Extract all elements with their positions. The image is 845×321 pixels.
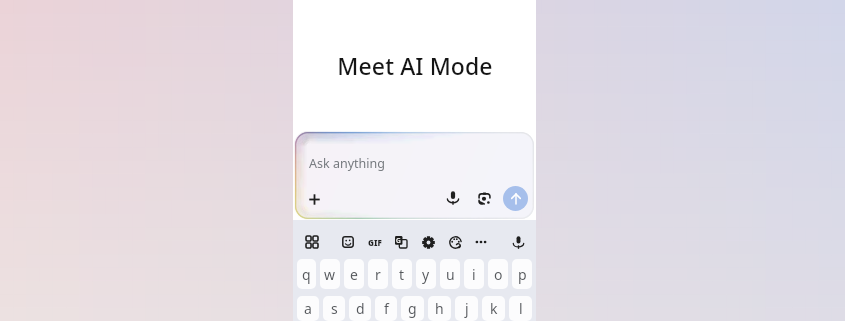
button[interactable]: o [488,259,508,289]
button[interactable]: g [401,296,424,321]
staticText: t [399,265,405,284]
button[interactable]: i [464,259,484,289]
staticText: d [356,299,365,318]
staticText: r [375,265,381,284]
button[interactable]: translate [391,232,411,252]
button[interactable]: j [455,296,478,321]
button[interactable] [296,133,533,218]
button[interactable]: Add [304,189,325,210]
button[interactable]: palette [445,232,465,252]
button[interactable]: gif [365,232,385,252]
staticText: GIF [368,237,382,248]
button[interactable]: gear [418,232,438,252]
staticText: j [465,299,469,318]
staticText: Ask anything [309,155,385,172]
staticText: a [304,299,312,318]
button[interactable]: l [509,296,532,321]
staticText: q [302,265,311,284]
staticText: e [350,265,358,284]
staticText: i [472,265,476,284]
button[interactable]: dots [471,232,491,252]
staticText: w [324,265,336,284]
button[interactable]: q [297,259,316,289]
staticText: k [490,299,498,318]
staticText: Meet AI Mode [337,50,493,81]
staticText: y [422,265,430,284]
button[interactable]: s [323,296,345,321]
staticText: g [408,299,417,318]
staticText: G [396,236,401,245]
button[interactable]: a [297,296,319,321]
staticText: u [446,265,455,284]
button[interactable]: w [320,259,340,289]
button[interactable]: r [368,259,388,289]
staticText: f [384,299,389,318]
button[interactable]: y [416,259,436,289]
button[interactable]: mic [508,232,528,252]
staticText: s [331,299,338,318]
button[interactable]: e [344,259,364,289]
button[interactable]: Voice search [442,187,464,209]
staticText: l [519,299,523,318]
staticText: p [518,265,527,284]
staticText: o [494,265,503,284]
button[interactable]: t [392,259,412,289]
button[interactable]: k [482,296,505,321]
button[interactable]: p [512,259,532,289]
button[interactable]: sticker [338,232,358,252]
button[interactable]: d [349,296,371,321]
button[interactable]: h [428,296,451,321]
button[interactable]: grid [302,232,322,252]
button[interactable]: Send [503,186,528,211]
button[interactable]: f [375,296,397,321]
button[interactable]: u [440,259,460,289]
button[interactable]: Google Lens [473,187,495,209]
staticText: h [435,299,444,318]
